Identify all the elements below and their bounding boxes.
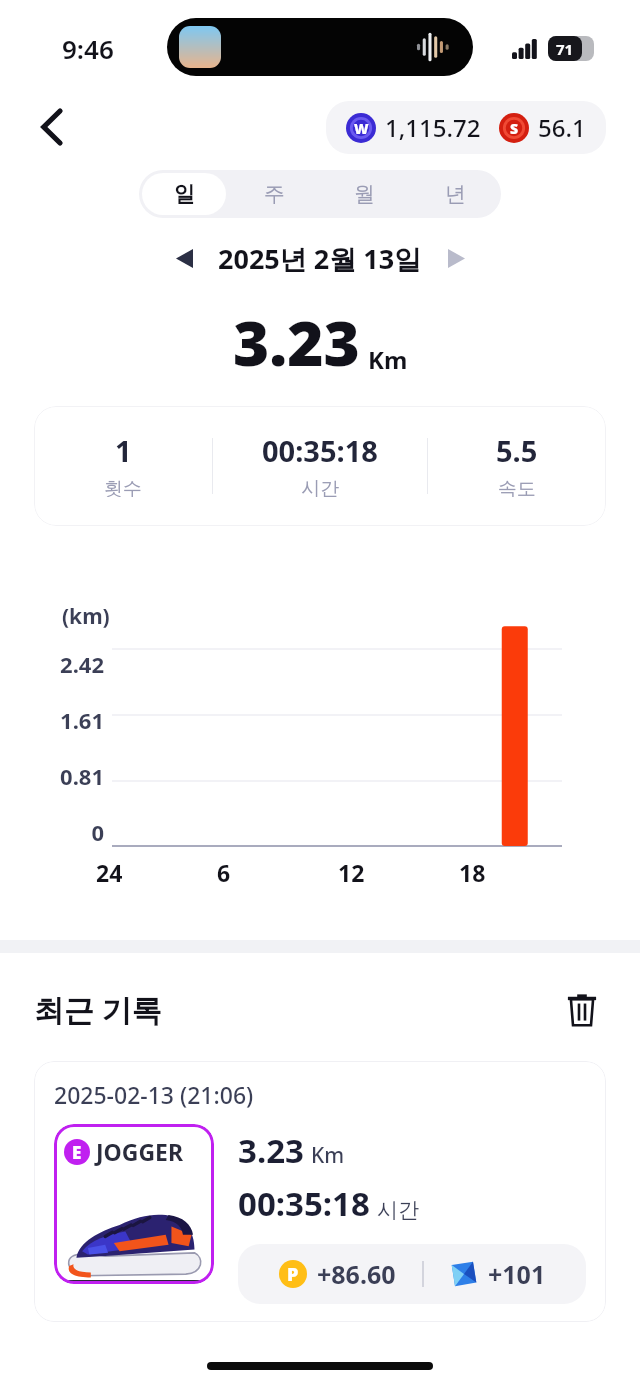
staticText: 시간 (377, 1197, 419, 1223)
staticText: 00:35:18 (262, 431, 378, 470)
staticText: W (354, 119, 369, 138)
staticText: Km (368, 343, 408, 376)
button[interactable]: 월 (322, 173, 407, 215)
staticText: 2025-02-13 (21:06) (54, 1079, 254, 1110)
button[interactable]: 년 (413, 173, 498, 215)
staticText: P (287, 1262, 299, 1287)
staticText: 71 (556, 39, 574, 59)
staticText: 56.1 (538, 111, 586, 144)
button[interactable]: E (54, 1124, 214, 1284)
staticText: 속도 (498, 477, 536, 501)
button[interactable]: Delete records (558, 985, 606, 1033)
staticText: 3.23 (238, 1128, 304, 1173)
staticText: (km) (62, 602, 110, 631)
staticText: 1.61 (60, 705, 104, 735)
staticText: 00:35:18 (238, 1181, 370, 1226)
staticText: 일 (174, 181, 195, 207)
staticText: 2.42 (60, 649, 104, 679)
staticText: 주 (264, 181, 285, 207)
button[interactable]: 1 (34, 431, 212, 501)
staticText: 9:46 (62, 31, 114, 66)
button[interactable]: W (326, 101, 606, 154)
button[interactable]: 주 (232, 173, 316, 215)
staticText: 3.23 (233, 300, 360, 384)
staticText: S (510, 119, 519, 138)
staticText: 월 (354, 181, 375, 207)
staticText: 18 (459, 857, 486, 888)
button[interactable]: 00:35:18 (213, 431, 427, 501)
staticText: 횟수 (104, 477, 142, 501)
staticText: 0 (91, 817, 104, 847)
button[interactable]: Previous day (164, 238, 204, 278)
staticText: JOGGER (96, 1136, 184, 1167)
button[interactable]: Back (30, 104, 76, 150)
staticText: 최근 기록 (34, 989, 162, 1030)
staticText: 0.81 (60, 761, 104, 791)
button[interactable]: 2025-02-13 (21:06) (34, 1061, 606, 1322)
button[interactable]: 일 (142, 173, 226, 215)
staticText: E (72, 1141, 82, 1164)
button[interactable]: Next day (436, 238, 476, 278)
staticText: 1 (115, 431, 132, 470)
staticText: 시간 (301, 477, 339, 501)
staticText: 5.5 (496, 431, 538, 470)
staticText: 24 (96, 857, 123, 888)
button[interactable]: P (238, 1244, 586, 1304)
staticText: Km (311, 1141, 345, 1170)
staticText: 2025년 2월 13일 (218, 240, 422, 277)
staticText: 1,115.72 (385, 111, 481, 144)
staticText: +86.60 (317, 1257, 396, 1291)
staticText: 6 (217, 857, 231, 888)
staticText: 12 (338, 857, 365, 888)
button[interactable]: 5.5 (428, 431, 606, 501)
staticText: 년 (445, 181, 466, 207)
staticText: +101 (488, 1257, 546, 1291)
